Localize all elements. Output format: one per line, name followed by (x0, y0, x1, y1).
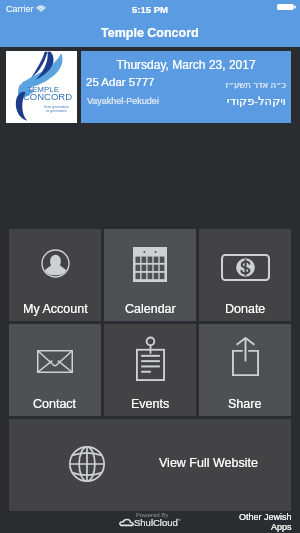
staticText: כ״ה אדר תשע״ז (201, 79, 286, 91)
staticText: ויקהל-פקודי (221, 93, 286, 109)
staticText: Share (228, 397, 262, 411)
staticText: 5:15 PM (0, 4, 300, 15)
staticText: My Account (23, 302, 88, 316)
staticText: View Full Website (159, 456, 258, 470)
staticText: Other Jewish (239, 512, 292, 522)
other: Website (69, 446, 105, 482)
button[interactable]: Temple Concord logo (6, 51, 77, 123)
staticText: Events (131, 397, 170, 411)
staticText: from generation to generation (44, 105, 69, 113)
staticText: Apps (271, 522, 292, 532)
staticText: Temple Concord (101, 26, 199, 40)
staticText: 25 Adar 5777 (86, 76, 155, 89)
button[interactable]: My Account (9, 229, 101, 321)
button[interactable]: Donate (199, 229, 291, 321)
staticText: Contact (33, 397, 77, 411)
staticText: Vayakhel-Pekudei (87, 96, 159, 106)
staticText: Donate (225, 302, 266, 316)
staticText: Powered By (136, 512, 169, 519)
button[interactable]: Thursday, March 23, 2017 (81, 51, 291, 123)
button[interactable]: Contact (9, 324, 101, 416)
button[interactable]: Other Jewish (239, 512, 292, 532)
staticText: Calendar (125, 302, 176, 316)
staticText: Thursday, March 23, 2017 (81, 58, 291, 71)
staticText: CONCORD (23, 91, 73, 102)
button[interactable]: Calendar (104, 229, 196, 321)
staticText: ™ (176, 517, 181, 523)
button[interactable]: Website (9, 419, 291, 511)
button[interactable]: Events (104, 324, 196, 416)
staticText: Carrier (6, 4, 34, 14)
button[interactable]: Share (199, 324, 291, 416)
staticText: ShulCloud (134, 517, 178, 528)
staticText: TEMPLE (27, 85, 60, 94)
